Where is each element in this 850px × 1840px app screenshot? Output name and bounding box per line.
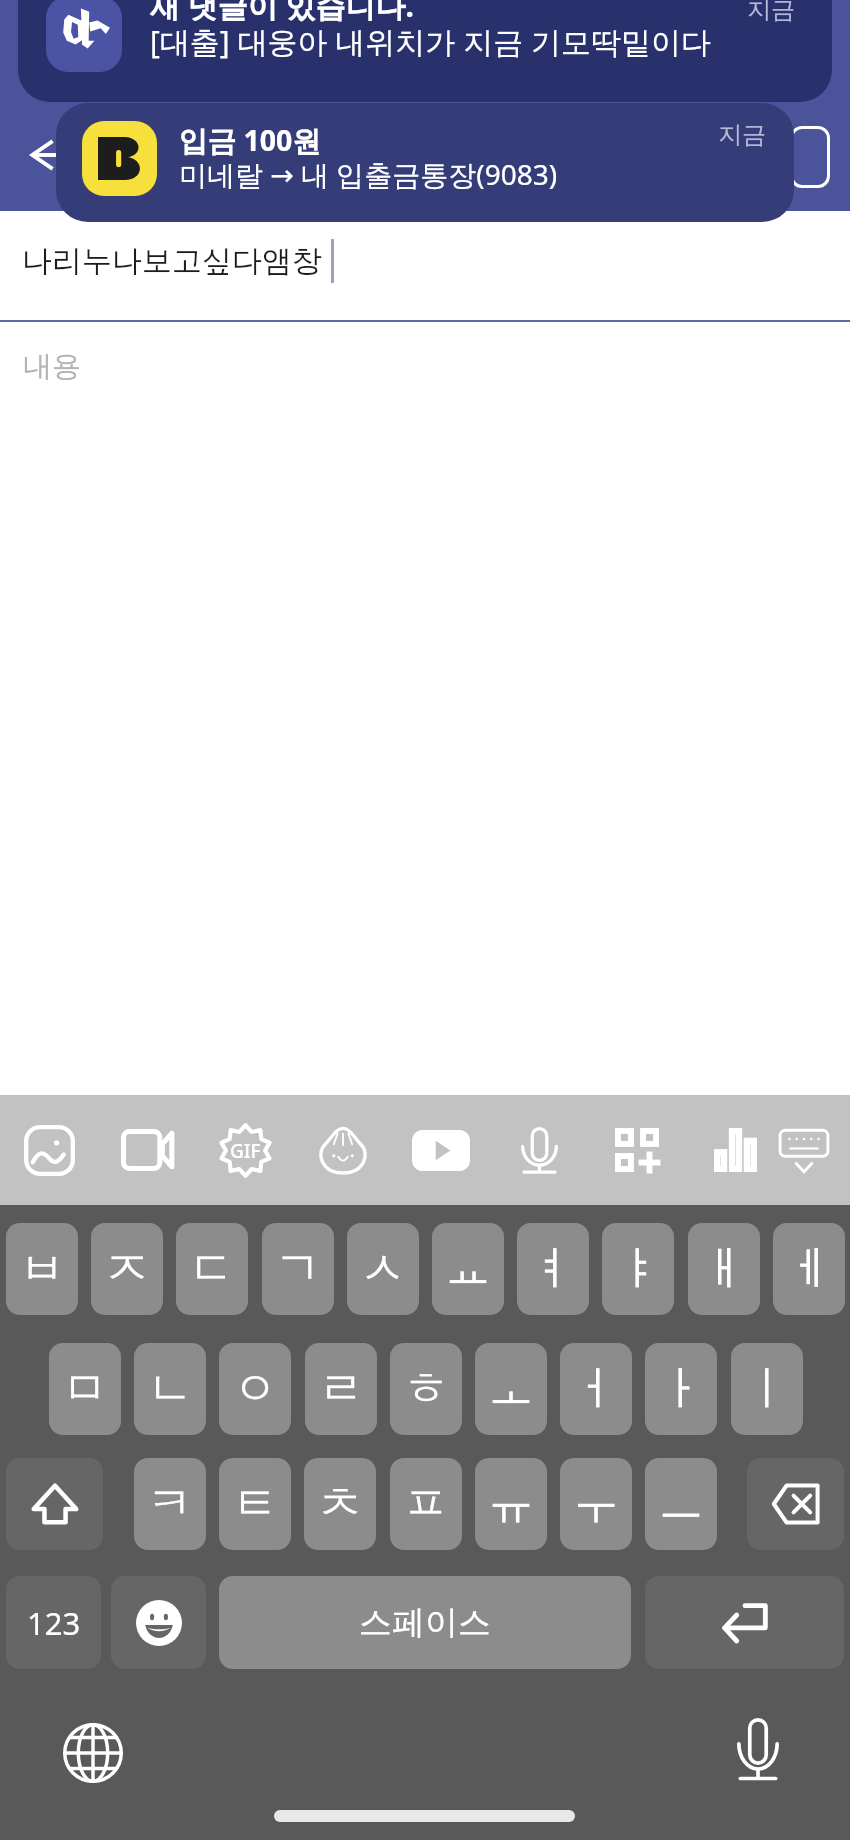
staticText: ㅜ — [573, 1475, 619, 1533]
button[interactable]: ㅍ — [390, 1458, 462, 1550]
staticText: ㅇ — [232, 1360, 278, 1418]
staticText: ㅓ — [573, 1360, 619, 1418]
button[interactable]: 입금 100원 — [56, 103, 794, 222]
button[interactable]: ㅏ — [645, 1343, 717, 1435]
button[interactable]: Backspace — [747, 1458, 844, 1550]
button[interactable]: Sticker — [299, 1106, 387, 1194]
staticText: ㅛ — [445, 1240, 491, 1298]
button[interactable]: Hide keyboard — [760, 1106, 848, 1194]
button[interactable]: 스페이스 — [219, 1576, 631, 1669]
staticText: 나리누나보고싶다앰창 — [22, 242, 322, 280]
button[interactable]: Video — [103, 1106, 191, 1194]
staticText: 미네랄 → 내 입출금통장(9083) — [179, 155, 558, 193]
button[interactable]: ㄷ — [176, 1223, 248, 1315]
staticText: ㄹ — [318, 1360, 364, 1418]
button[interactable]: Change language — [57, 1717, 128, 1788]
button[interactable]: ㅓ — [560, 1343, 632, 1435]
button[interactable]: ㅗ — [475, 1343, 547, 1435]
staticText: ㅂ — [19, 1240, 65, 1298]
button[interactable]: YouTube — [397, 1106, 485, 1194]
button[interactable]: Apps — [593, 1106, 681, 1194]
staticText: ㅡ — [658, 1475, 704, 1533]
staticText: GIF — [230, 1138, 261, 1164]
staticText: 내용 — [23, 348, 81, 385]
button[interactable]: ㅊ — [304, 1458, 376, 1550]
button[interactable]: Voice input — [722, 1714, 793, 1785]
button[interactable]: Shift — [6, 1458, 103, 1550]
button[interactable]: 새 댓글이 있습니다. — [18, 0, 832, 102]
button[interactable]: ㅈ — [91, 1223, 163, 1315]
staticText: ㄱ — [275, 1240, 321, 1298]
button[interactable]: ㄱ — [262, 1223, 334, 1315]
button[interactable]: ㅂ — [6, 1223, 78, 1315]
staticText: 123 — [27, 1602, 81, 1644]
staticText: ㅎ — [403, 1360, 449, 1418]
staticText: 스페이스 — [359, 1602, 491, 1644]
staticText: ㄴ — [147, 1360, 193, 1418]
button[interactable]: ㅇ — [219, 1343, 291, 1435]
button[interactable]: ㅛ — [432, 1223, 504, 1315]
button[interactable]: ㅋ — [134, 1458, 206, 1550]
button[interactable]: ㅌ — [219, 1458, 291, 1550]
button[interactable]: ㅕ — [517, 1223, 589, 1315]
staticText: ㅁ — [62, 1360, 108, 1418]
staticText: ㅠ — [488, 1475, 534, 1533]
staticText: ㄷ — [189, 1240, 235, 1298]
staticText: ㅏ — [658, 1360, 704, 1418]
button[interactable]: ㅠ — [475, 1458, 547, 1550]
button[interactable]: ㄴ — [134, 1343, 206, 1435]
staticText: ㅐ — [701, 1240, 747, 1298]
staticText: ㅑ — [615, 1240, 661, 1298]
staticText: ㅌ — [232, 1475, 278, 1533]
button[interactable]: GIF — [201, 1106, 289, 1194]
staticText: ㅍ — [403, 1475, 449, 1533]
button[interactable]: ㅔ — [773, 1223, 845, 1315]
button[interactable]: Voice — [495, 1106, 583, 1194]
button[interactable]: ㅑ — [602, 1223, 674, 1315]
staticText: ㅕ — [530, 1240, 576, 1298]
button[interactable]: Enter — [645, 1576, 844, 1669]
button[interactable]: ㅣ — [731, 1343, 803, 1435]
button[interactable]: ㅐ — [688, 1223, 760, 1315]
staticText: 입금 100원 — [179, 121, 321, 160]
staticText: 지금 — [747, 0, 795, 25]
staticText: 새 댓글이 있습니다. — [150, 0, 415, 26]
button[interactable]: Back — [20, 127, 76, 183]
button[interactable]: Poll — [691, 1106, 779, 1194]
button[interactable]: Emoji — [111, 1576, 206, 1669]
button[interactable]: More — [790, 126, 830, 188]
staticText: 지금 — [718, 120, 766, 150]
button[interactable]: ㄹ — [305, 1343, 377, 1435]
staticText: ㅋ — [147, 1475, 193, 1533]
button[interactable]: ㅎ — [390, 1343, 462, 1435]
staticText: ㅗ — [488, 1360, 534, 1418]
staticText: ㅣ — [744, 1360, 790, 1418]
button[interactable]: ㅜ — [560, 1458, 632, 1550]
staticText: ㅅ — [360, 1240, 406, 1298]
staticText: ㅈ — [104, 1240, 150, 1298]
staticText: [대출] 대웅아 내위치가 지금 기모딱밑이다 — [150, 21, 711, 62]
button[interactable]: ㅅ — [347, 1223, 419, 1315]
button[interactable]: 123 — [6, 1576, 101, 1669]
button[interactable]: ㅡ — [645, 1458, 717, 1550]
staticText: ㅊ — [317, 1475, 363, 1533]
staticText: ㅔ — [786, 1240, 832, 1298]
button[interactable]: ㅁ — [49, 1343, 121, 1435]
button[interactable]: Gallery — [5, 1106, 93, 1194]
